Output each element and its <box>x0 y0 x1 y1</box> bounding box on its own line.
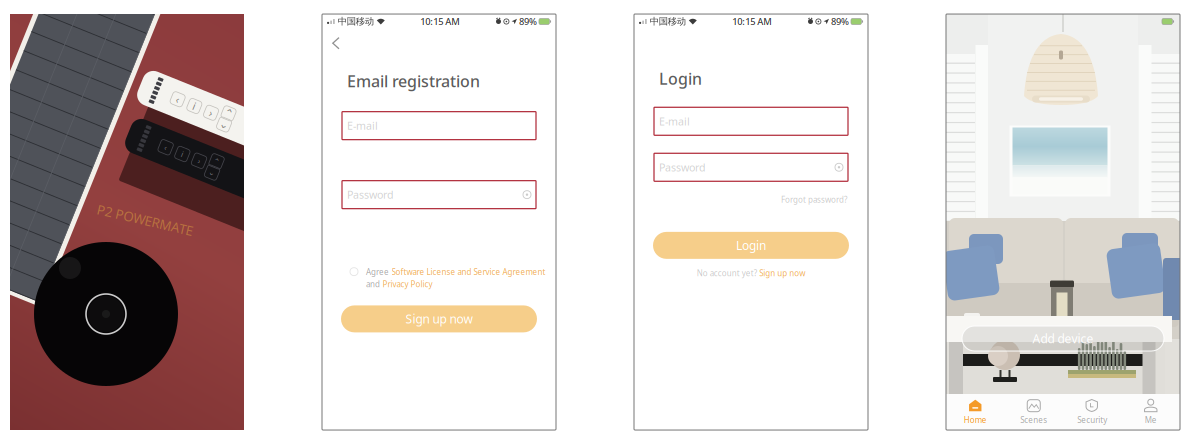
staticText: and <box>366 279 380 289</box>
staticText: Sign up now <box>405 311 472 327</box>
staticText: i <box>190 111 193 125</box>
staticText: E-mail <box>659 114 690 128</box>
button[interactable]: Back <box>325 32 347 54</box>
button[interactable]: Agree to terms <box>350 267 358 276</box>
staticText: Add device <box>1032 330 1093 346</box>
staticText: Privacy Policy <box>382 279 432 289</box>
staticText: 10:15 AM <box>732 15 772 28</box>
staticText: 中国移动 <box>338 16 374 27</box>
button[interactable]: Forgot password? <box>781 192 847 207</box>
staticText: ⌄ <box>222 118 231 130</box>
staticText: No account yet? <box>697 268 757 278</box>
staticText: Scenes <box>1020 415 1047 425</box>
staticText: ⌃ <box>211 155 218 165</box>
staticText: ‹ <box>172 111 175 125</box>
button[interactable]: Sign up now <box>341 305 537 332</box>
staticText: Password <box>347 188 394 202</box>
staticText: Login <box>736 237 766 253</box>
staticText: E-mail <box>347 119 378 133</box>
staticText: Agree <box>366 267 389 277</box>
staticText: Me <box>1145 415 1157 425</box>
staticText: Home <box>964 415 987 425</box>
button[interactable]: Login <box>653 232 849 259</box>
staticText: Password <box>659 160 706 174</box>
staticText: › <box>197 161 199 171</box>
staticText: Security <box>1077 415 1107 425</box>
staticText: Software License and Service Agreement <box>391 267 545 277</box>
staticText: ‹ <box>161 161 163 171</box>
staticText: 89% <box>519 15 537 28</box>
button[interactable]: Scenes <box>1004 394 1063 430</box>
staticText: ⌃ <box>222 106 231 118</box>
staticText: › <box>208 111 211 125</box>
staticText: P2 POWERMATE <box>96 211 194 229</box>
staticText: Forgot password? <box>781 194 847 205</box>
button[interactable]: Security <box>1063 394 1121 430</box>
staticText: Sign up now <box>759 268 805 278</box>
button[interactable]: Home <box>946 394 1004 430</box>
staticText: Login <box>659 68 702 89</box>
staticText: 10:15 AM <box>420 15 460 28</box>
staticText: 中国移动 <box>650 16 686 27</box>
staticText: ⌄ <box>211 167 218 177</box>
button[interactable]: Add device <box>962 326 1164 351</box>
staticText: Email registration <box>347 70 480 92</box>
button[interactable]: No account yet? <box>697 266 805 280</box>
staticText: 89% <box>831 15 849 28</box>
button[interactable]: Me <box>1121 394 1180 430</box>
